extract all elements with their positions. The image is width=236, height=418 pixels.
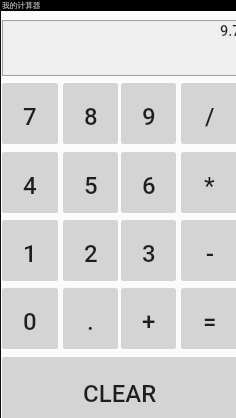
staticText: 6	[142, 172, 156, 200]
staticText: 8	[84, 103, 98, 131]
staticText: +	[142, 308, 156, 336]
staticText: 2	[84, 240, 98, 268]
staticText: 9	[142, 103, 156, 131]
staticText: 我的计算器	[2, 1, 41, 11]
staticText: /	[205, 103, 215, 131]
button[interactable]: 1	[2, 220, 58, 281]
button[interactable]: 9	[121, 83, 176, 144]
staticText: *	[204, 172, 215, 200]
button[interactable]: /	[181, 83, 236, 144]
button[interactable]: .	[63, 288, 118, 349]
staticText: 9.7	[220, 23, 236, 40]
button[interactable]: 7	[2, 83, 58, 144]
button[interactable]: 5	[63, 152, 118, 213]
staticText: 7	[23, 103, 37, 131]
button[interactable]: +	[121, 288, 176, 349]
staticText: -	[206, 240, 214, 268]
staticText: 4	[23, 172, 37, 200]
staticText: CLEAR	[83, 380, 157, 408]
button[interactable]: *	[181, 152, 236, 213]
button[interactable]: =	[181, 288, 236, 349]
button[interactable]: 8	[63, 83, 118, 144]
button[interactable]: -	[181, 220, 236, 281]
staticText: 5	[84, 172, 98, 200]
staticText: 1	[23, 240, 37, 268]
staticText: 0	[23, 308, 37, 336]
button[interactable]: 4	[2, 152, 58, 213]
staticText: .	[87, 308, 94, 336]
staticText: 3	[142, 240, 156, 268]
staticText: =	[203, 308, 217, 336]
button[interactable]: CLEAR	[2, 357, 236, 418]
button[interactable]: 3	[121, 220, 176, 281]
button[interactable]: 6	[121, 152, 176, 213]
button[interactable]: 0	[2, 288, 58, 349]
button[interactable]: 2	[63, 220, 118, 281]
button[interactable]: 9.7	[3, 21, 236, 75]
